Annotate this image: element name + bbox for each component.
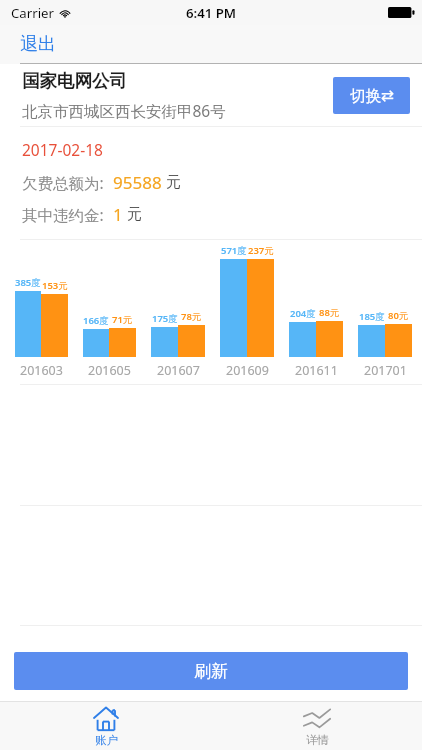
- staticText: 北京市西城区西长安街甲86号: [22, 100, 226, 121]
- button[interactable]: 账户: [0, 702, 211, 750]
- staticText: 88元: [319, 306, 340, 319]
- staticText: 退出: [20, 33, 56, 56]
- staticText: 78元: [181, 310, 202, 323]
- staticText: 切换⇄: [350, 86, 394, 106]
- staticText: 385度: [15, 276, 41, 289]
- staticText: 刷新: [194, 661, 228, 682]
- staticText: 237元: [248, 244, 274, 257]
- staticText: 201605: [88, 362, 131, 379]
- staticText: 71元: [112, 313, 133, 326]
- button[interactable]: 退出: [12, 29, 64, 60]
- staticText: Carrier: [11, 4, 54, 22]
- staticText: 201611: [295, 362, 338, 379]
- staticText: 166度: [83, 314, 109, 327]
- button[interactable]: 详情: [211, 702, 422, 750]
- staticText: 元: [127, 205, 142, 224]
- staticText: 201603: [20, 362, 63, 379]
- staticText: 账户: [95, 733, 118, 747]
- staticText: 1: [113, 203, 123, 226]
- staticText: 元: [166, 173, 181, 192]
- staticText: 其中违约金:: [22, 204, 104, 225]
- staticText: 95588: [113, 171, 162, 194]
- staticText: 国家电网公司: [22, 70, 127, 92]
- staticText: 6:41 PM: [186, 4, 237, 22]
- staticText: 204度: [290, 307, 316, 320]
- staticText: 175度: [152, 312, 178, 325]
- staticText: 185度: [359, 310, 385, 323]
- staticText: 201609: [226, 362, 269, 379]
- staticText: 201607: [157, 362, 200, 379]
- staticText: 2017-02-18: [22, 139, 103, 160]
- staticText: 详情: [306, 733, 329, 747]
- staticText: 欠费总额为:: [22, 172, 104, 193]
- staticText: 201701: [364, 362, 407, 379]
- staticText: 153元: [42, 279, 68, 292]
- button[interactable]: 切换⇄: [333, 77, 410, 114]
- staticText: 571度: [221, 244, 247, 257]
- button[interactable]: 刷新: [14, 652, 408, 690]
- staticText: 80元: [388, 309, 409, 322]
